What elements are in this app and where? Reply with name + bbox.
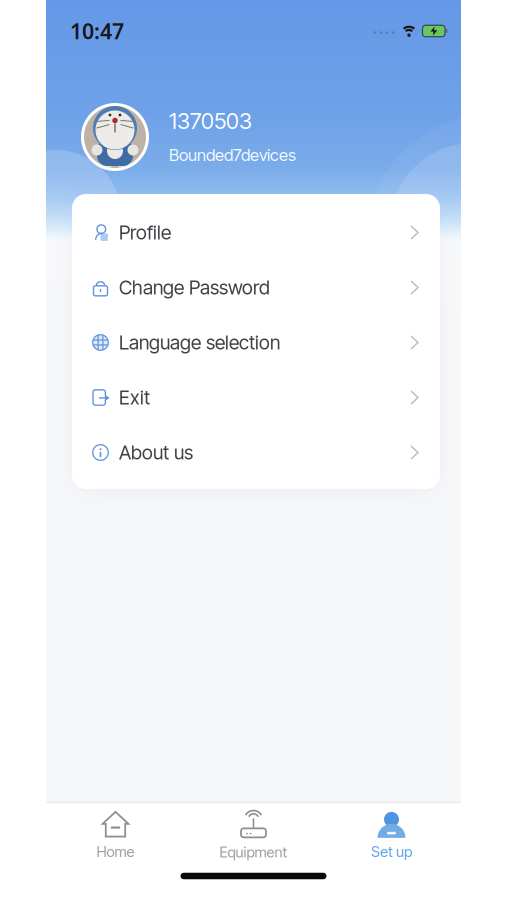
button[interactable]: Home (46, 807, 184, 865)
staticText: About us (119, 441, 193, 464)
button[interactable]: Language selection (72, 315, 440, 370)
staticText: 1370503 (169, 108, 252, 134)
staticText: Set up (371, 843, 412, 861)
button[interactable]: Profile (72, 205, 440, 260)
staticText: Language selection (119, 331, 280, 354)
staticText: Bounded7devices (169, 145, 296, 165)
staticText: Equipment (219, 843, 287, 861)
staticText: Change Password (119, 276, 270, 299)
button[interactable]: Change Password (72, 260, 440, 315)
button[interactable]: Exit (72, 370, 440, 425)
staticText: Profile (119, 221, 171, 244)
staticText: Home (96, 843, 134, 861)
staticText: Exit (119, 386, 150, 409)
button[interactable]: Set up (322, 807, 460, 865)
button[interactable]: About us (72, 425, 440, 480)
button[interactable]: Equipment (184, 807, 322, 865)
staticText: 10:47 (70, 17, 124, 45)
